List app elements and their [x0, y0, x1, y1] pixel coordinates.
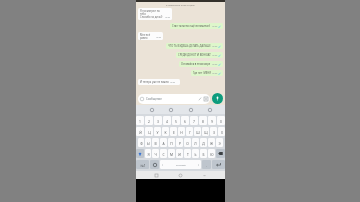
staticText: 7 — [193, 119, 195, 123]
button[interactable]: Emoji — [150, 160, 159, 169]
button[interactable]: А — [160, 138, 167, 147]
staticText: Т — [187, 152, 189, 156]
button[interactable]: Оставайся в этом мире — [179, 61, 223, 67]
button[interactable]: Send voice message — [212, 93, 223, 104]
button[interactable]: К — [162, 127, 169, 136]
button[interactable]: Ш — [194, 127, 201, 136]
staticText: Б — [202, 152, 205, 156]
staticText: П — [170, 141, 173, 145]
button[interactable]: Мне всё равно — [138, 32, 163, 40]
button[interactable]: Attach — [198, 97, 202, 101]
staticText: Р — [179, 141, 181, 145]
button[interactable]: 8 — [199, 116, 207, 125]
button[interactable]: Ы — [145, 138, 151, 147]
staticText: Э — [218, 141, 221, 145]
staticText: Д — [202, 141, 205, 145]
button[interactable]: Г — [186, 127, 193, 136]
button[interactable]: 9 — [208, 116, 216, 125]
button[interactable]: Stickers — [148, 106, 155, 113]
button[interactable]: Ф — [138, 138, 144, 147]
button[interactable]: №1 — [136, 160, 149, 169]
button[interactable]: И — [176, 149, 183, 158]
button[interactable]: У — [154, 127, 161, 136]
button[interactable]: Voice input — [167, 106, 174, 113]
staticText: Я — [147, 152, 150, 156]
button[interactable]: 1 — [136, 116, 144, 125]
button[interactable]: В — [152, 138, 159, 147]
button[interactable]: Л — [192, 138, 199, 147]
button[interactable]: ЧТО ТЫ БУДЕШЬ ДЕЛАТЬ ДАЛЬШЕ — [166, 43, 223, 49]
button[interactable]: Backspace — [216, 149, 225, 158]
button[interactable]: 2 — [145, 116, 153, 125]
staticText: Спасибо за дичь)) — [140, 15, 163, 19]
staticText: Ж — [210, 141, 213, 145]
button[interactable]: М — [168, 149, 175, 158]
staticText: Мне всё равно — [140, 33, 155, 39]
staticText: 0 — [220, 119, 222, 123]
button[interactable]: 0 — [217, 116, 225, 125]
button[interactable]: Б — [200, 149, 207, 158]
staticText: ‹ — [162, 163, 163, 167]
staticText: Сообщение — [146, 97, 162, 101]
button[interactable]: Э — [216, 138, 223, 147]
staticText: В — [154, 141, 157, 145]
button[interactable]: Сообщение — [138, 94, 210, 104]
staticText: Л — [194, 141, 197, 145]
button[interactable]: Стал ты меня ещё вспоминал! — [170, 23, 223, 29]
staticText: 2 — [148, 119, 150, 123]
button[interactable]: З — [210, 127, 217, 136]
button[interactable]: Р — [176, 138, 183, 147]
button[interactable]: Я — [145, 149, 151, 158]
button[interactable]: 3 — [154, 116, 162, 125]
button[interactable]: О — [184, 138, 191, 147]
staticText: Й — [139, 130, 142, 134]
button[interactable]: Shift — [136, 149, 144, 158]
button[interactable]: Back — [201, 172, 208, 179]
button[interactable]: Ч — [152, 149, 159, 158]
button[interactable]: ‹ — [160, 160, 201, 169]
staticText: в переписке плюс в цепь — [166, 3, 195, 6]
button[interactable]: СРЕДИ ДОНОТ И ВОНЮАТ — [176, 52, 223, 58]
button[interactable]: Щ — [202, 127, 209, 136]
button[interactable]: Ю — [208, 149, 215, 158]
staticText: 5 — [175, 119, 177, 123]
button[interactable]: Н — [178, 127, 185, 136]
button[interactable]: Recents — [153, 172, 160, 179]
button[interactable]: Х — [218, 127, 225, 136]
button[interactable]: Ц — [145, 127, 153, 136]
staticText: Ы — [147, 141, 150, 145]
button[interactable]: Settings — [206, 106, 213, 113]
staticText: О — [186, 141, 189, 145]
button[interactable]: Enter — [212, 160, 225, 169]
button[interactable]: Ж — [208, 138, 215, 147]
button[interactable]: П — [168, 138, 175, 147]
staticText: Ц — [148, 130, 151, 134]
staticText: И теперь уже не важно — [140, 80, 169, 84]
staticText: Оставайся в этом мире — [181, 62, 211, 66]
button[interactable]: С — [160, 149, 167, 158]
button[interactable]: 5 — [172, 116, 180, 125]
staticText: Ч — [154, 152, 157, 156]
staticText: 14:23 — [212, 63, 217, 66]
button[interactable]: Emoji — [187, 106, 194, 113]
staticText: Х — [221, 130, 223, 134]
button[interactable]: Й — [136, 127, 144, 136]
button[interactable]: Я посмотрел на тебя — [138, 8, 172, 20]
button[interactable]: Т — [184, 149, 191, 158]
staticText: 14:22 — [156, 36, 161, 39]
staticText: 9 — [211, 119, 213, 123]
button[interactable]: 4 — [163, 116, 171, 125]
button[interactable]: Home — [177, 172, 184, 179]
button[interactable]: Где нет МЕНЯ — [191, 70, 223, 76]
button[interactable]: 7 — [190, 116, 198, 125]
staticText: 14:23 — [212, 45, 217, 48]
staticText: №1 — [140, 163, 146, 167]
button[interactable]: Д — [200, 138, 207, 147]
button[interactable]: Camera — [204, 97, 208, 101]
button[interactable]: 6 — [181, 116, 189, 125]
button[interactable]: Е — [170, 127, 177, 136]
button[interactable]: Ь — [192, 149, 199, 158]
staticText: Русский — [176, 163, 186, 166]
button[interactable]: И теперь уже не важно — [138, 79, 180, 85]
